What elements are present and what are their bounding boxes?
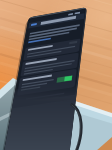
button[interactable]: Phone with settings screen on a desk <box>0 0 112 150</box>
